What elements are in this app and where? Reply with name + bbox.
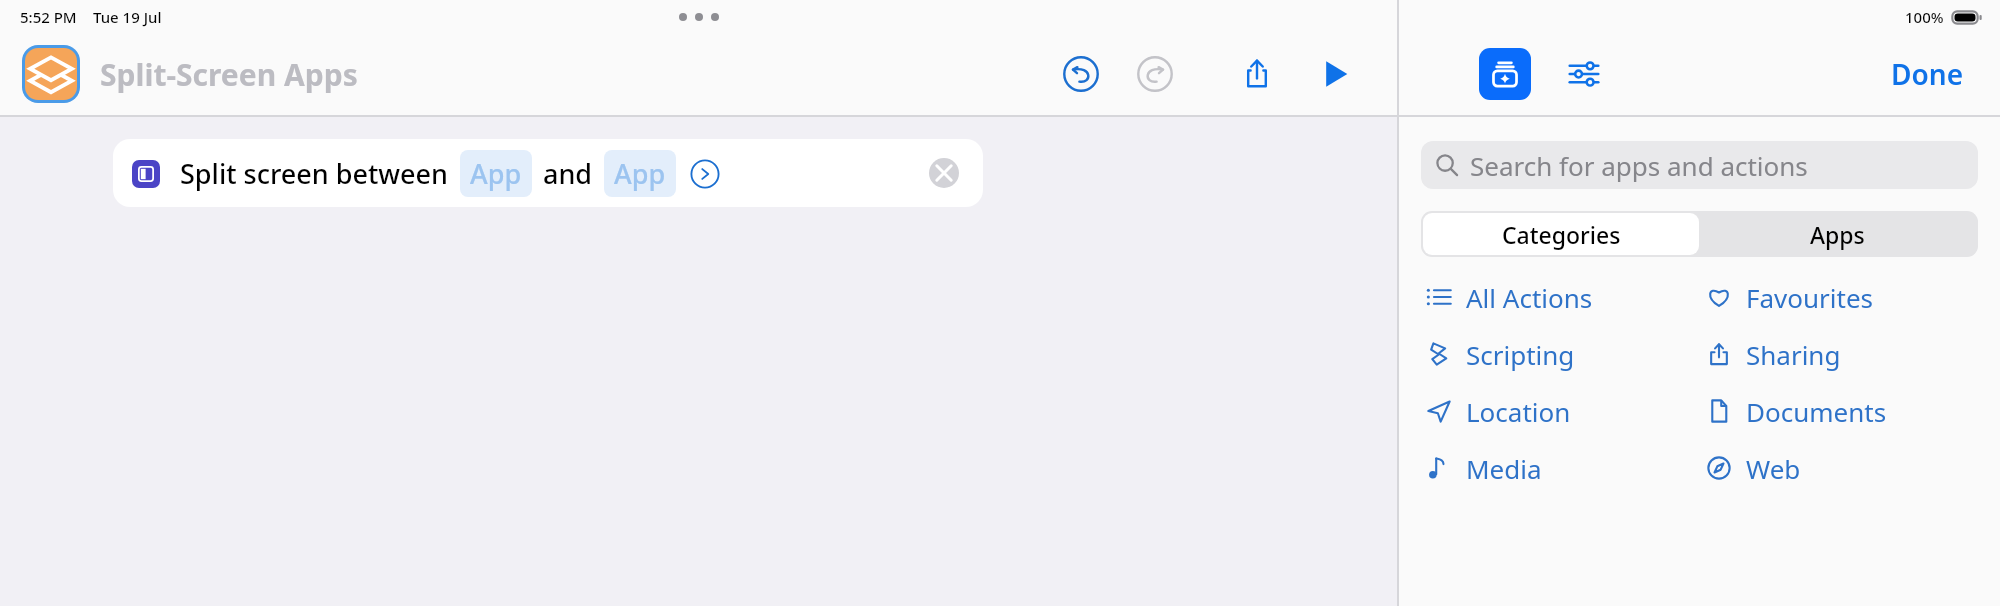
staticText: and <box>543 155 593 192</box>
staticText: Split-Screen Apps <box>100 54 358 95</box>
button[interactable]: Shortcut icon <box>25 48 77 100</box>
staticText: Web <box>1746 451 1801 486</box>
staticText: Location <box>1466 394 1571 429</box>
staticText: Scripting <box>1466 337 1575 372</box>
button[interactable]: Split screen between <box>113 139 983 207</box>
button[interactable]: Location <box>1425 393 1699 429</box>
staticText: Sharing <box>1746 337 1841 372</box>
staticText: Tue 19 Jul <box>93 7 162 27</box>
button[interactable]: Scripting <box>1425 336 1699 372</box>
button[interactable]: Media <box>1425 450 1699 486</box>
button[interactable]: Search for apps and actions <box>1421 141 1978 189</box>
button[interactable]: Undo <box>1059 52 1103 96</box>
button[interactable]: Documents <box>1705 393 2000 429</box>
staticText: Done <box>1891 55 1964 93</box>
staticText: App <box>614 155 666 192</box>
staticText: All Actions <box>1466 280 1593 315</box>
button[interactable]: Share <box>1235 52 1279 96</box>
button[interactable]: Done <box>1881 49 1974 99</box>
button[interactable]: All Actions <box>1425 279 1699 315</box>
staticText: Search for apps and actions <box>1470 148 1808 183</box>
button[interactable]: Settings <box>1561 51 1607 97</box>
staticText: Documents <box>1746 394 1887 429</box>
button[interactable]: Show more <box>688 157 722 191</box>
button[interactable]: Apps <box>1699 213 1976 255</box>
staticText: App <box>470 155 522 192</box>
button[interactable]: App <box>604 150 676 197</box>
staticText: Apps <box>1810 219 1865 250</box>
button[interactable]: Categories <box>1423 213 1699 255</box>
button[interactable]: Redo <box>1133 52 1177 96</box>
button[interactable]: Sharing <box>1705 336 2000 372</box>
staticText: Categories <box>1502 219 1621 250</box>
staticText: Split screen between <box>180 155 449 192</box>
staticText: Media <box>1466 451 1542 486</box>
staticText: Favourites <box>1746 280 1874 315</box>
staticText: 100% <box>1905 7 1944 27</box>
staticText: 5:52 PM <box>20 7 77 27</box>
button[interactable]: Run <box>1313 52 1357 96</box>
button[interactable]: Favourites <box>1705 279 2000 315</box>
button[interactable]: App <box>460 150 532 197</box>
button[interactable]: Delete action <box>929 158 959 188</box>
button[interactable]: App intents <box>1479 48 1531 100</box>
button[interactable]: Web <box>1705 450 2000 486</box>
